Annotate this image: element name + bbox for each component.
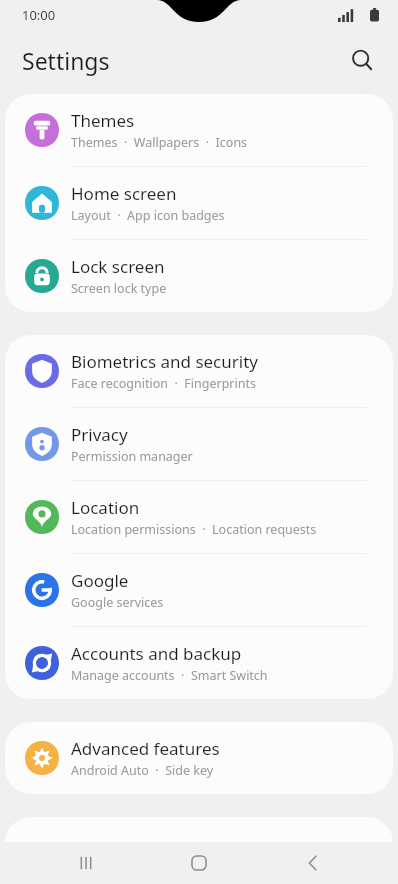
staticText: Settings [22,45,110,76]
button[interactable]: Privacy [5,408,393,481]
button[interactable]: Digital Wellbeing and parental [5,817,393,884]
staticText: Google services [71,594,164,611]
staticText: Privacy [71,423,128,446]
staticText: Layout · App icon badges [71,207,225,224]
staticText: Manage accounts · Smart Switch [71,667,268,684]
staticText: Face recognition · Fingerprints [71,375,256,392]
button[interactable]: Home screen [5,167,393,240]
staticText: Permission manager [71,448,193,465]
button[interactable]: Lock screen [5,240,393,312]
staticText: Themes · Wallpapers · Icons [71,134,248,151]
button[interactable]: Biometrics and security [5,335,393,408]
button[interactable]: Advanced features [5,722,393,794]
staticText: Digital Wellbeing and parental [71,839,313,862]
staticText: Location [71,496,140,519]
staticText: Advanced features [71,737,220,760]
staticText: Lock screen [71,255,165,278]
staticText: Android Auto · Side key [71,762,214,779]
button[interactable]: Home [171,842,227,884]
staticText: Accounts and backup [71,642,242,665]
staticText: Biometrics and security [71,350,258,373]
button[interactable]: Back [285,842,341,884]
staticText: Home screen [71,182,177,205]
button[interactable]: Google [5,554,393,627]
staticText: 10:00 [22,6,56,24]
button[interactable]: Search [340,38,384,82]
staticText: Themes [71,109,135,132]
button[interactable]: Location [5,481,393,554]
button[interactable]: Recent apps [58,842,114,884]
button[interactable]: Accounts and backup [5,627,393,699]
staticText: Google [71,569,129,592]
staticText: Location permissions · Location requests [71,521,317,538]
staticText: Screen lock type [71,280,167,297]
button[interactable]: Themes [5,94,393,167]
